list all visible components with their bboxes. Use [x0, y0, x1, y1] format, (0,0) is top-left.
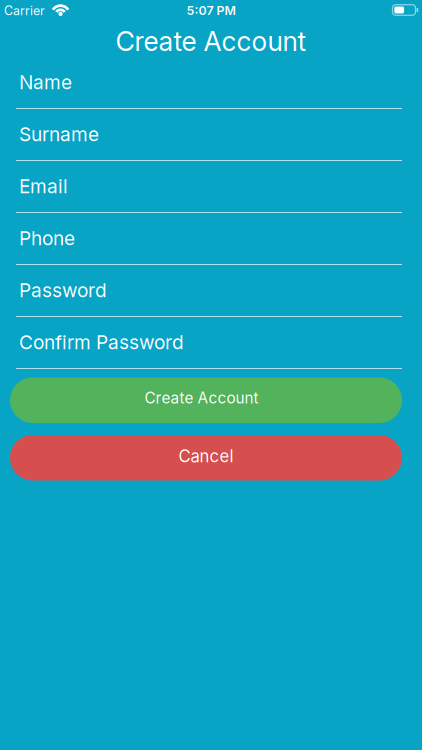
- button[interactable]: Create Account: [10, 377, 402, 423]
- staticText: 5:07 PM: [186, 3, 235, 18]
- staticText: Cancel: [178, 446, 233, 466]
- staticText: Phone: [19, 227, 75, 250]
- staticText: Name: [19, 71, 72, 94]
- button[interactable]: Name: [16, 70, 402, 109]
- button[interactable]: Cancel: [10, 435, 402, 480]
- button[interactable]: Confirm Password: [16, 330, 402, 369]
- staticText: Email: [19, 175, 68, 198]
- staticText: Carrier: [4, 3, 45, 18]
- staticText: Create Account: [144, 389, 258, 407]
- staticText: Surname: [19, 123, 99, 146]
- button[interactable]: Surname: [16, 122, 402, 161]
- staticText: Confirm Password: [19, 331, 184, 354]
- button[interactable]: Phone: [16, 226, 402, 265]
- staticText: Create Account: [115, 25, 306, 57]
- button[interactable]: Email: [16, 174, 402, 213]
- staticText: Password: [19, 279, 107, 302]
- button[interactable]: Password: [16, 278, 402, 317]
